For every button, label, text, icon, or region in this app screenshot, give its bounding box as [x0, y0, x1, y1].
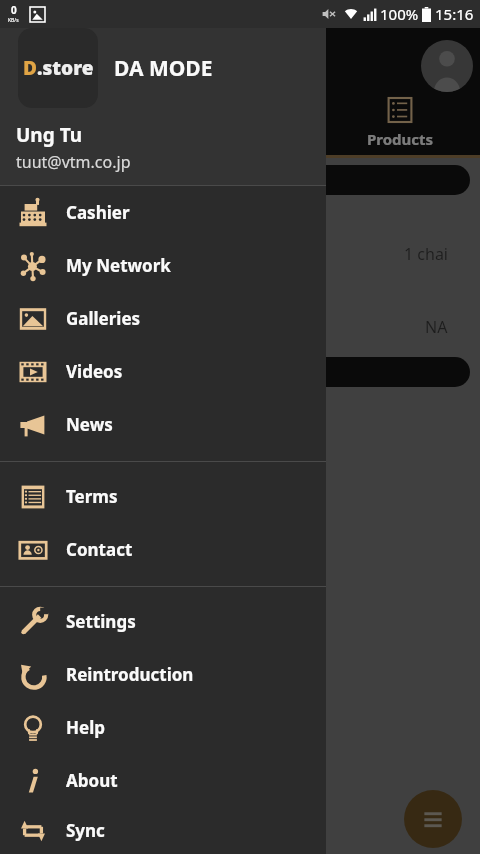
- staticText: D: [23, 55, 37, 81]
- staticText: Cashier: [66, 201, 130, 224]
- staticText: About: [66, 769, 118, 792]
- staticText: 0: [11, 3, 17, 17]
- staticText: .store: [37, 55, 94, 81]
- button[interactable]: About: [0, 754, 326, 807]
- staticText: Reintroduction: [66, 663, 194, 686]
- staticText: Settings: [66, 610, 136, 633]
- button[interactable]: My Network: [0, 239, 326, 292]
- staticText: News: [66, 413, 113, 436]
- button[interactable]: Sync: [0, 807, 326, 854]
- staticText: DA MODE: [114, 54, 213, 83]
- staticText: Ung Tu: [16, 122, 83, 148]
- button[interactable]: Help: [0, 701, 326, 754]
- staticText: Sync: [66, 819, 105, 842]
- button[interactable]: News: [0, 398, 326, 451]
- staticText: My Network: [66, 254, 171, 277]
- staticText: NA: [425, 316, 448, 338]
- staticText: KB/s: [8, 17, 19, 24]
- button[interactable]: Terms: [0, 470, 326, 523]
- button[interactable]: Settings: [0, 595, 326, 648]
- button[interactable]: Products: [350, 95, 450, 149]
- staticText: Terms: [66, 485, 118, 508]
- staticText: Products: [367, 129, 434, 149]
- button[interactable]: Profile: [421, 40, 473, 92]
- button[interactable]: Videos: [0, 345, 326, 398]
- staticText: 15:16: [435, 4, 474, 24]
- staticText: Galleries: [66, 307, 141, 330]
- button[interactable]: Contact: [0, 523, 326, 576]
- button[interactable]: Reintroduction: [0, 648, 326, 701]
- staticText: tuut@vtm.co.jp: [16, 151, 131, 173]
- staticText: 100%: [380, 4, 419, 24]
- button[interactable]: Galleries: [0, 292, 326, 345]
- button[interactable]: Menu: [404, 790, 462, 848]
- staticText: Help: [66, 716, 105, 739]
- staticText: Videos: [66, 360, 123, 383]
- staticText: 1 chai: [404, 243, 448, 265]
- button[interactable]: Cashier: [0, 186, 326, 239]
- staticText: Contact: [66, 538, 133, 561]
